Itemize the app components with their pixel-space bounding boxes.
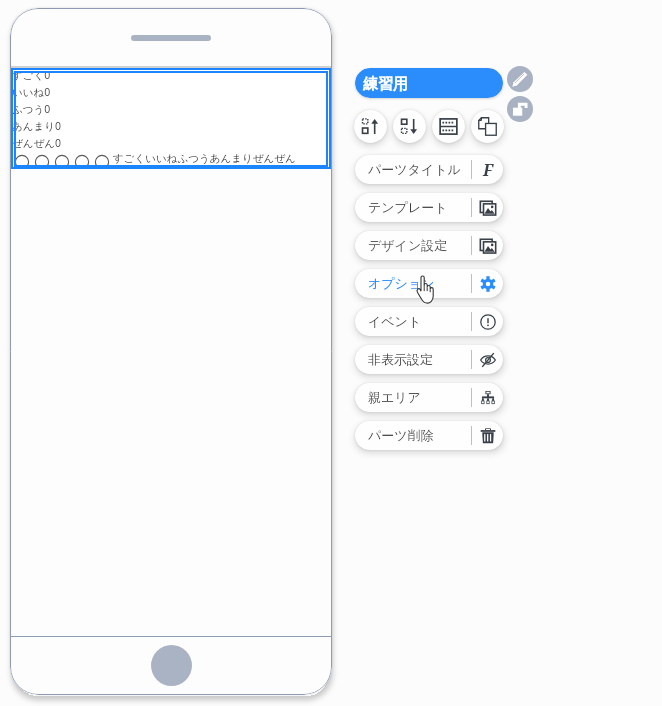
button[interactable]: Edit [507,66,533,92]
staticText: いいね0 [13,85,51,99]
staticText: F [483,159,493,181]
staticText: イベント [368,313,471,329]
button[interactable]: パーツ削除 [355,421,503,450]
button[interactable]: オプション [355,269,503,298]
button[interactable]: Move up [354,110,387,143]
button[interactable]: テンプレート [355,193,503,222]
staticText: 練習用 [363,75,408,94]
staticText: すごくいいねふつうあんまりぜんぜん [113,152,296,165]
staticText: 親エリア [368,389,471,405]
staticText: テンプレート [368,199,471,215]
button[interactable]: デザイン設定 [355,231,503,260]
staticText: 非表示設定 [368,351,471,367]
staticText: すごく0 [13,70,51,82]
button[interactable]: 練習用 [355,68,503,98]
button[interactable]: Unlock [507,96,533,122]
staticText: パーツ削除 [368,427,471,443]
button[interactable]: すごく0 [11,68,331,169]
button[interactable]: パーツタイトル [355,155,503,184]
button[interactable]: 親エリア [355,383,503,412]
staticText: パーツタイトル [368,161,471,177]
staticText: デザイン設定 [368,237,471,253]
staticText: あんまり0 [13,119,61,133]
button[interactable]: Duplicate [471,110,504,143]
button[interactable]: 非表示設定 [355,345,503,374]
staticText: ぜんぜん0 [13,136,61,150]
button[interactable]: Move down [393,110,426,143]
staticText: オプション [368,275,471,291]
button[interactable]: イベント [355,307,503,336]
button[interactable]: Grid layout [432,110,465,143]
staticText: ふつう0 [13,102,51,116]
